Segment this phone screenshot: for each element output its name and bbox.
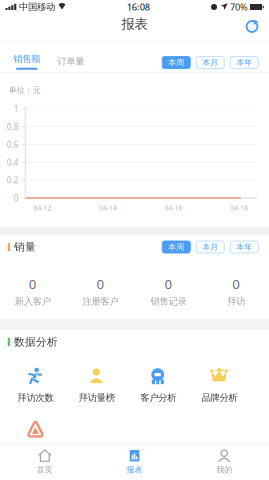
button[interactable]: 本周 — [162, 56, 190, 68]
button[interactable]: 刷新 — [237, 14, 269, 40]
staticText: 中国移动 — [19, 1, 55, 13]
staticText: 拜访次数 — [17, 392, 53, 403]
staticText: 销售额 — [13, 53, 40, 65]
staticText: 我的 — [216, 465, 232, 475]
staticText: 0.4 — [7, 157, 19, 168]
staticText: 0.6 — [7, 139, 19, 150]
staticText: 订单量 — [57, 56, 84, 67]
button[interactable]: 本年 — [230, 56, 258, 68]
button[interactable]: 销售额 — [12, 40, 42, 72]
button[interactable]: 订单量 — [56, 40, 86, 72]
staticText: 客户分析 — [140, 392, 176, 403]
staticText: 04-12 — [33, 204, 51, 212]
button[interactable]: 拜访次数 — [5, 367, 66, 403]
button[interactable]: 我的 — [179, 444, 269, 475]
staticText: 新入客户 — [15, 296, 51, 307]
button[interactable]: 报表 — [90, 444, 179, 475]
button[interactable]: 本月 — [196, 56, 224, 68]
staticText: 0 — [164, 275, 172, 293]
button[interactable]: 客户分析 — [127, 367, 189, 403]
staticText: 数据分析 — [14, 335, 58, 348]
staticText: 本年 — [236, 58, 252, 67]
staticText: 销售记录 — [150, 296, 186, 307]
staticText: 首页 — [37, 465, 53, 475]
staticText: 0.8 — [7, 121, 19, 132]
staticText: 70% — [230, 1, 248, 13]
staticText: 0 — [232, 275, 240, 293]
staticText: 注册客户 — [83, 296, 119, 307]
button[interactable]: 本月 — [196, 241, 224, 253]
staticText: 本年 — [236, 242, 252, 252]
staticText: 品牌分析 — [202, 392, 238, 403]
staticText: 1 — [14, 104, 19, 114]
staticText: 单位：元 — [9, 85, 41, 95]
staticText: 销量 — [14, 240, 36, 253]
staticText: 报表 — [126, 465, 142, 475]
staticText: 16:08 — [127, 1, 150, 13]
staticText: 本周 — [168, 242, 184, 252]
button[interactable]: 拜访量榜 — [66, 367, 127, 403]
staticText: 04-18 — [230, 204, 248, 212]
staticText: 0.2 — [7, 175, 19, 185]
button[interactable]: 品牌分析 — [189, 367, 250, 403]
staticText: 本周 — [168, 58, 184, 67]
staticText: 拜访量榜 — [79, 392, 115, 403]
staticText: 拜访 — [227, 296, 245, 307]
button[interactable]: 本周 — [162, 241, 190, 253]
button[interactable]: 本年 — [230, 241, 258, 253]
staticText: 本月 — [202, 242, 218, 252]
staticText: 0 — [29, 275, 37, 293]
staticText: 04-16 — [164, 204, 182, 212]
staticText: 报表 — [121, 16, 147, 32]
staticText: 0 — [14, 193, 19, 203]
staticText: 本月 — [202, 58, 218, 67]
staticText: 04-14 — [99, 204, 117, 212]
button[interactable] — [5, 420, 66, 458]
button[interactable]: 首页 — [0, 444, 90, 475]
staticText: 0 — [97, 275, 105, 293]
